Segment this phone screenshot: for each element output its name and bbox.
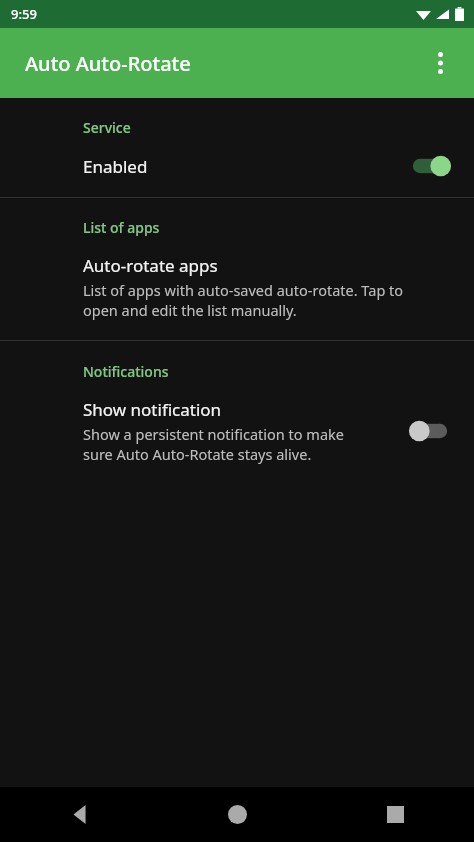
button[interactable]: Enabled (0, 137, 474, 197)
staticText: Enabled (83, 155, 148, 178)
staticText: Service (83, 118, 131, 137)
button[interactable]: Back (0, 787, 158, 842)
button[interactable]: Home (158, 787, 316, 842)
staticText: List of apps (83, 218, 160, 237)
staticText: List of apps with auto-saved auto-rotate… (83, 280, 404, 320)
staticText: Auto Auto-Rotate (25, 50, 191, 77)
staticText: Auto-rotate apps (83, 254, 218, 277)
button[interactable]: More options (418, 41, 462, 85)
button[interactable]: Off (408, 416, 452, 446)
button[interactable]: On (408, 151, 452, 181)
staticText: Show a persistent notification to make s… (83, 424, 344, 464)
staticText: 9:59 (11, 5, 37, 23)
staticText: Show notification (83, 398, 222, 421)
button[interactable]: Show notification (0, 381, 474, 484)
staticText: Notifications (83, 362, 169, 381)
button[interactable]: Recent apps (316, 787, 474, 842)
button[interactable]: Auto-rotate apps (0, 237, 474, 340)
